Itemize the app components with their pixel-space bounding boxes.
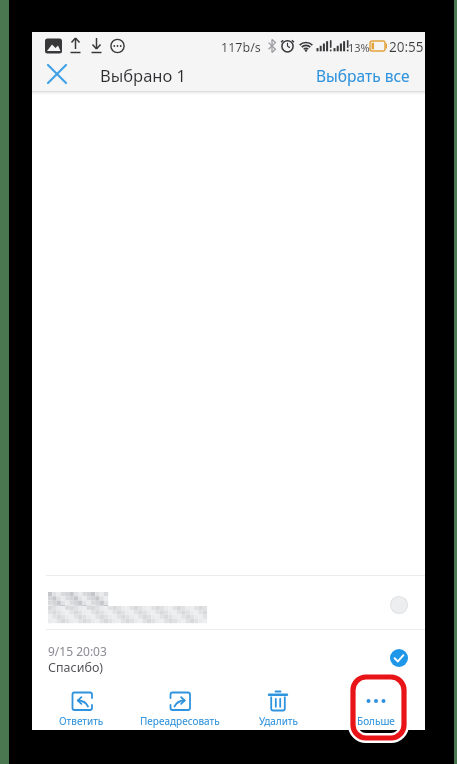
- staticText: Удалить: [259, 714, 298, 728]
- button[interactable]: Удалить: [229, 684, 327, 730]
- button[interactable]: [40, 57, 74, 91]
- staticText: Выбрано 1: [100, 64, 186, 86]
- staticText: 20:55: [389, 38, 424, 56]
- button[interactable]: 9/15 20:03: [32, 630, 425, 684]
- button[interactable]: Переадресовать: [131, 684, 229, 730]
- button[interactable]: Выбрать все: [316, 65, 410, 86]
- staticText: Спасибо): [48, 659, 104, 676]
- staticText: 13%: [348, 40, 370, 55]
- button[interactable]: Ответить: [32, 684, 131, 730]
- staticText: Больше: [357, 714, 395, 728]
- button[interactable]: Больше: [327, 684, 425, 730]
- staticText: Переадресовать: [140, 714, 220, 728]
- staticText: 117b/s: [221, 39, 261, 56]
- staticText: Ответить: [59, 714, 104, 728]
- button[interactable]: [32, 576, 425, 629]
- staticText: 9/15 20:03: [48, 643, 107, 659]
